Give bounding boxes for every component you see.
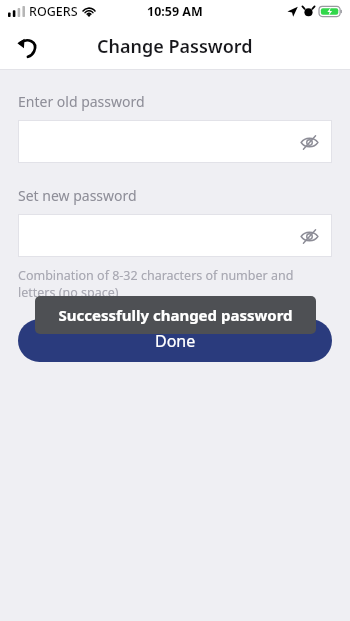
button[interactable]: Show password (18, 120, 332, 163)
staticText: Successfully changed password (58, 305, 293, 325)
staticText: Enter old password (18, 92, 145, 111)
button[interactable]: Back (8, 27, 46, 65)
staticText: ROGERS (29, 3, 78, 20)
staticText: Set new password (18, 186, 137, 205)
staticText: Change Password (97, 34, 253, 59)
button[interactable]: Show password (294, 127, 324, 157)
staticText: Done (155, 330, 196, 352)
staticText: Combination of 8-32 characters of number… (18, 267, 294, 301)
button[interactable]: Show password (294, 221, 324, 251)
button[interactable]: Show password (18, 214, 332, 257)
staticText: 10:59 AM (147, 3, 203, 20)
button[interactable]: Done (18, 319, 332, 362)
